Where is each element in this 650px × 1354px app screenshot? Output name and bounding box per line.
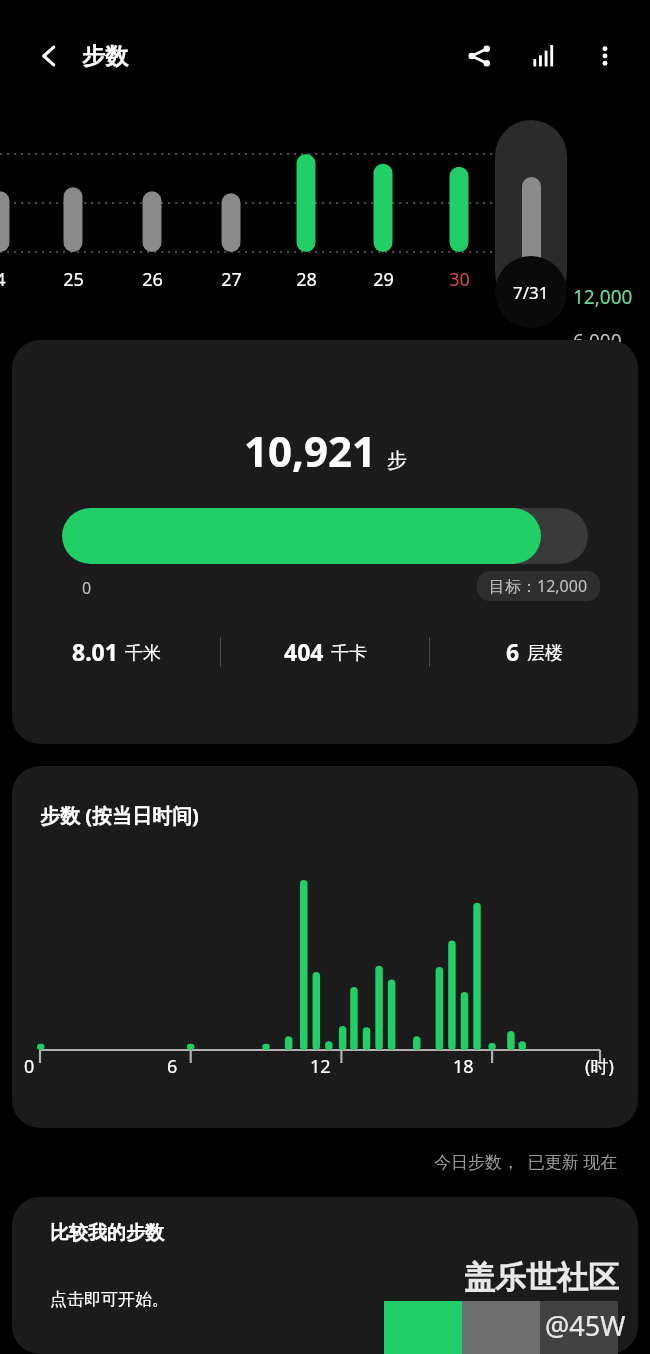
staticText: 404: [284, 636, 324, 667]
staticText: 步: [387, 448, 407, 473]
staticText: 步数 (按当日时间): [40, 802, 199, 829]
button[interactable]: 比较我的步数: [12, 1197, 638, 1354]
staticText: 12: [310, 1054, 331, 1079]
staticText: 千卡: [331, 642, 367, 665]
staticText: @45W: [545, 1307, 626, 1344]
staticText: 25: [63, 267, 84, 292]
staticText: 12,000: [573, 284, 633, 310]
staticText: 千米: [125, 642, 161, 665]
button[interactable]: 10,921: [12, 340, 638, 744]
staticText: 6,000: [573, 328, 622, 354]
button[interactable]: [495, 120, 567, 308]
staticText: 点击即可开始。: [50, 1289, 169, 1310]
button[interactable]: Back: [26, 33, 72, 79]
staticText: 6: [167, 1054, 178, 1079]
button[interactable]: 步数 (按当日时间): [12, 766, 638, 1128]
staticText: 盖乐世社区: [464, 1258, 619, 1297]
staticText: 0: [24, 1054, 35, 1079]
button[interactable]: 6: [430, 636, 638, 667]
staticText: 18: [453, 1054, 474, 1079]
staticText: 层楼: [527, 642, 563, 665]
button[interactable]: More options: [580, 31, 630, 81]
button[interactable]: 404: [221, 636, 429, 667]
staticText: 27: [221, 267, 242, 292]
staticText: 29: [373, 267, 394, 292]
staticText: 7/31: [513, 281, 549, 304]
staticText: (时): [585, 1054, 614, 1079]
staticText: 26: [142, 267, 163, 292]
staticText: 目标：12,000: [489, 575, 588, 597]
staticText: 0: [82, 577, 92, 599]
staticText: 比较我的步数: [50, 1221, 164, 1245]
staticText: 28: [296, 267, 317, 292]
button[interactable]: Share: [454, 31, 504, 81]
staticText: 步数: [82, 42, 128, 71]
staticText: 4: [0, 267, 6, 292]
staticText: 今日步数， 已更新 现在: [434, 1150, 618, 1173]
staticText: 6: [506, 636, 520, 667]
staticText: 10,921: [244, 422, 377, 479]
staticText: 8.01: [72, 636, 118, 667]
button[interactable]: 8.01: [12, 636, 220, 667]
button[interactable]: Statistics: [518, 31, 568, 81]
staticText: 30: [449, 267, 470, 292]
